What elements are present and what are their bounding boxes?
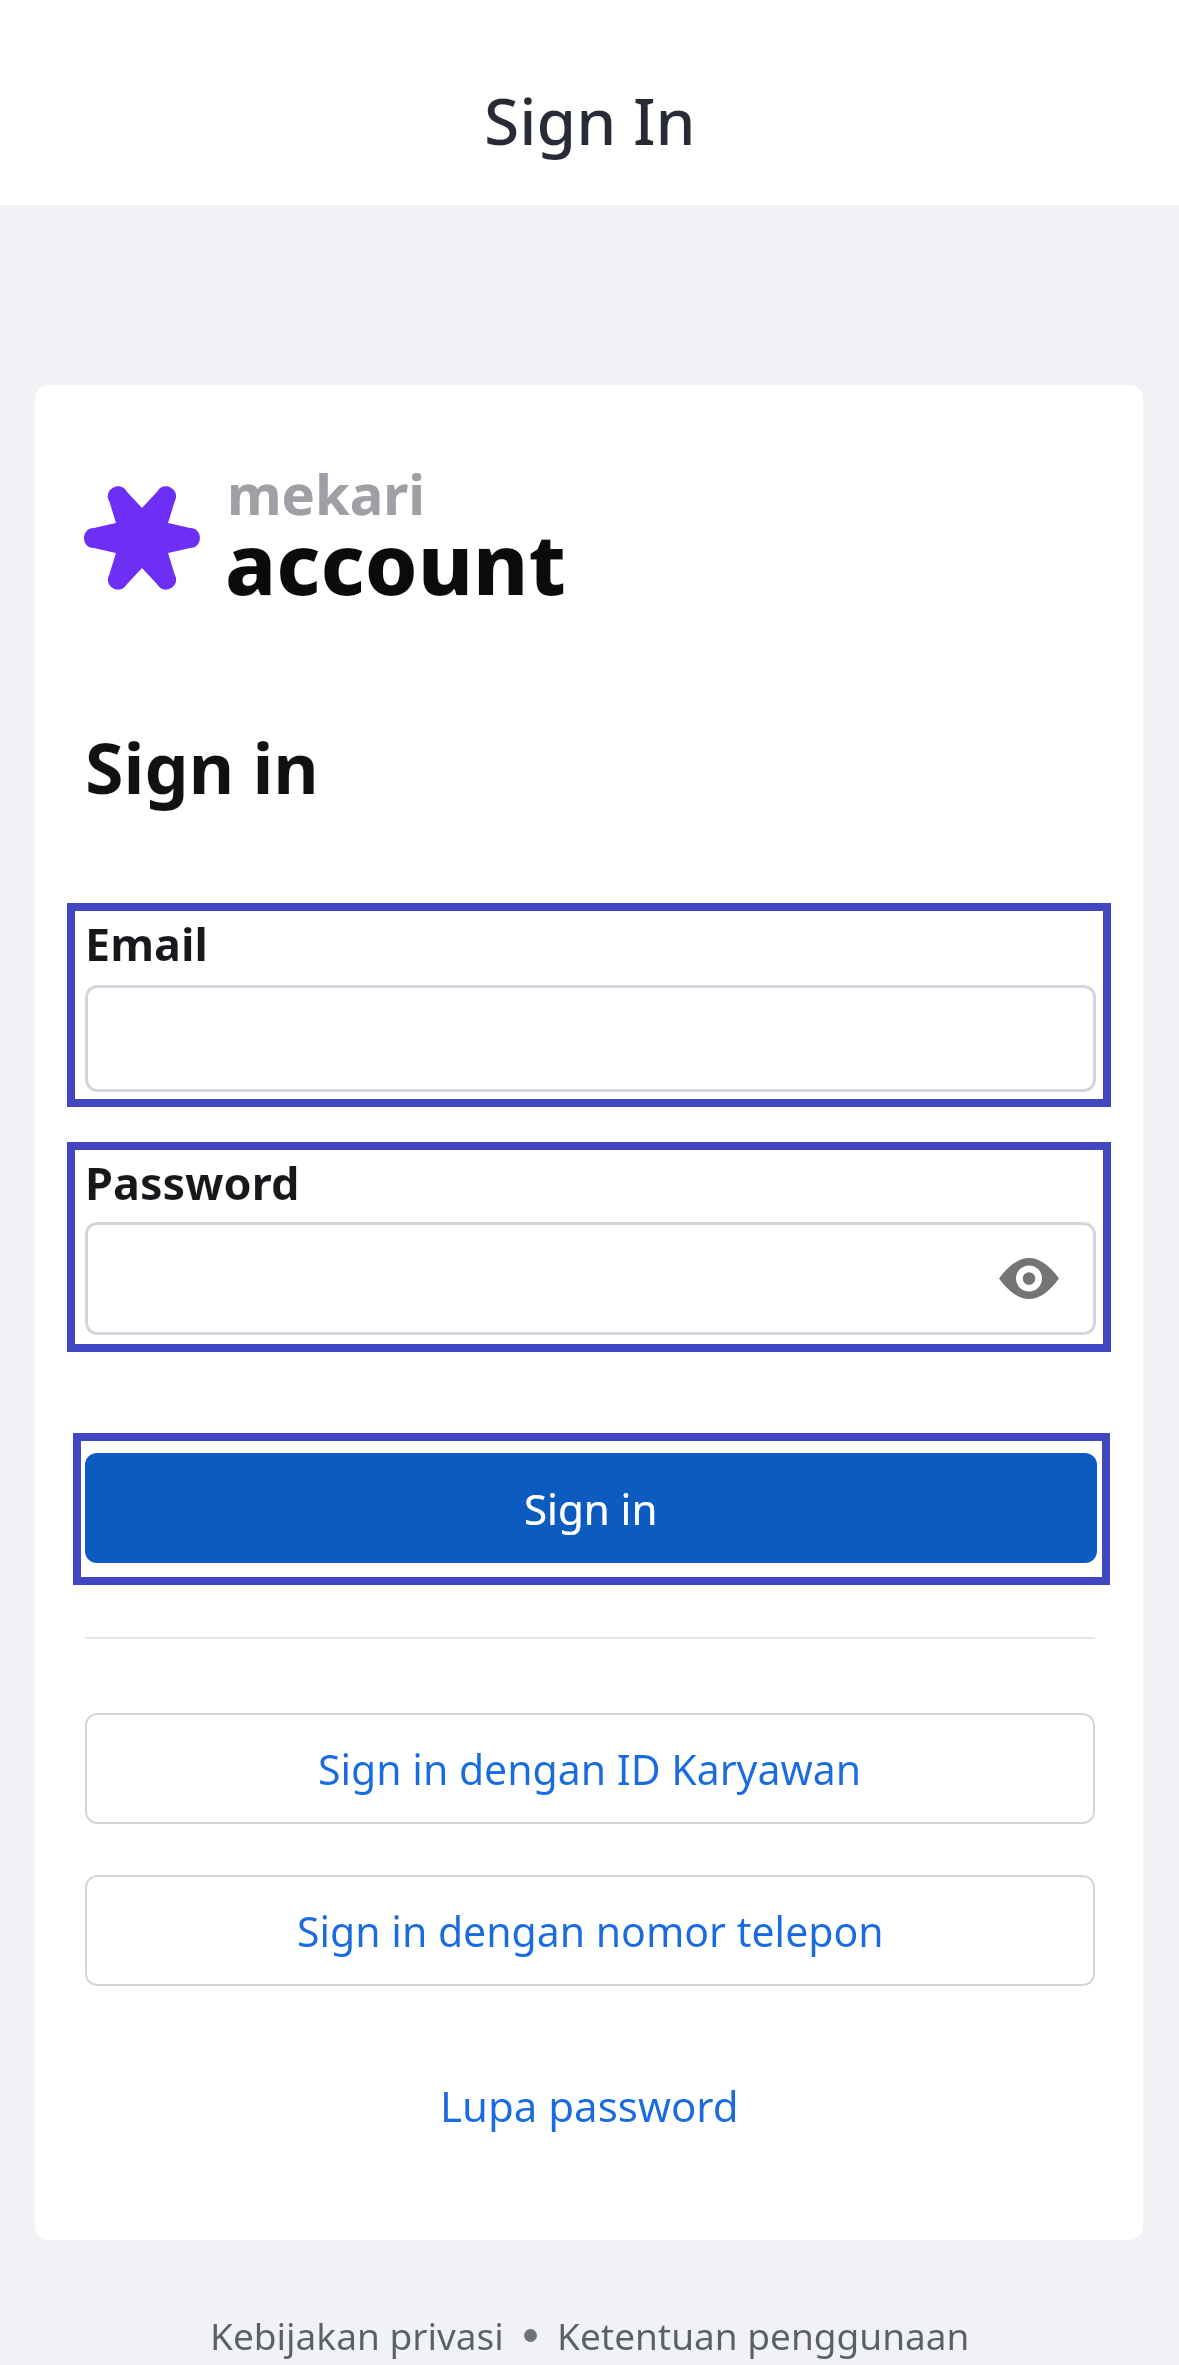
- button[interactable]: [85, 985, 1096, 1092]
- button[interactable]: Ketentuan penggunaan: [557, 2310, 970, 2360]
- staticText: mekari: [227, 455, 426, 531]
- staticText: Password: [85, 1152, 300, 1213]
- button[interactable]: Sign in dengan ID Karyawan: [85, 1713, 1095, 1824]
- button[interactable]: Sign in: [85, 1453, 1097, 1563]
- button[interactable]: Lupa password: [440, 2077, 739, 2134]
- staticText: Sign in dengan ID Karyawan: [318, 1741, 862, 1797]
- button[interactable]: [85, 1222, 1096, 1335]
- button[interactable]: Kebijakan privasi: [210, 2310, 504, 2360]
- staticText: Sign in: [85, 719, 319, 814]
- staticText: Sign in dengan nomor telepon: [297, 1903, 884, 1959]
- staticText: account: [225, 505, 566, 619]
- button[interactable]: Sign in dengan nomor telepon: [85, 1875, 1095, 1986]
- staticText: Email: [85, 913, 208, 974]
- staticText: Sign in: [524, 1480, 658, 1537]
- staticText: Sign In: [484, 77, 696, 164]
